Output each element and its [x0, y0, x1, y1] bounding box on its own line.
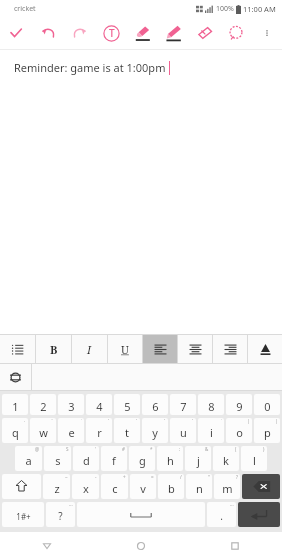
- staticText: .: [220, 509, 223, 523]
- button[interactable]: ˊ: [86, 418, 112, 443]
- button[interactable]: Recents: [188, 532, 282, 560]
- staticText: x: [83, 481, 89, 496]
- button[interactable]: (: [213, 446, 239, 471]
- button[interactable]: ': [73, 446, 99, 471]
- staticText: ': [95, 446, 97, 452]
- staticText: a: [25, 453, 32, 468]
- button[interactable]: ?: [214, 474, 240, 499]
- staticText: 4: [96, 399, 103, 414]
- staticText: k: [223, 453, 229, 468]
- staticText: t: [125, 425, 129, 440]
- button[interactable]: Lasso select: [220, 17, 251, 49]
- button[interactable]: |: [226, 418, 252, 443]
- button[interactable]: Bullet list: [0, 335, 35, 363]
- staticText: -: [95, 474, 97, 480]
- button[interactable]: *: [129, 446, 155, 471]
- button[interactable]: Align center: [178, 335, 212, 363]
- button[interactable]: =: [130, 474, 156, 499]
- staticText: 3: [68, 399, 75, 414]
- button[interactable]: ˙: [198, 418, 224, 443]
- staticText: ˊ: [164, 418, 166, 424]
- button[interactable]: Text color: [248, 335, 282, 363]
- button[interactable]: 1: [2, 394, 28, 415]
- button[interactable]: ~: [43, 474, 70, 499]
- button[interactable]: Sync: [0, 364, 31, 390]
- button[interactable]: ): [241, 446, 267, 471]
- button[interactable]: 7: [170, 394, 196, 415]
- button[interactable]: :: [157, 446, 183, 471]
- staticText: 5: [124, 399, 131, 414]
- staticText: ?: [236, 474, 238, 480]
- staticText: b: [168, 481, 175, 496]
- button[interactable]: 1#+: [2, 502, 44, 527]
- button[interactable]: 0: [254, 394, 280, 415]
- button[interactable]: Shift: [2, 474, 41, 499]
- button[interactable]: Eraser: [189, 17, 220, 49]
- button[interactable]: U: [108, 335, 142, 363]
- button[interactable]: Home: [94, 532, 188, 560]
- staticText: U: [121, 342, 129, 357]
- button[interactable]: #: [101, 446, 127, 471]
- staticText: w: [39, 425, 48, 440]
- button[interactable]: ···: [207, 502, 236, 527]
- button[interactable]: ˙: [58, 418, 84, 443]
- button[interactable]: Space: [77, 502, 205, 527]
- button[interactable]: Reminder: game is at 1:00pm: [0, 50, 282, 334]
- staticText: S: [66, 446, 69, 452]
- button[interactable]: B: [36, 335, 71, 363]
- staticText: (: [235, 446, 237, 452]
- button[interactable]: &: [185, 446, 211, 471]
- staticText: 8: [208, 399, 215, 414]
- button[interactable]: ···: [46, 502, 75, 527]
- button[interactable]: Text tool: [96, 17, 127, 49]
- button[interactable]: More options: [251, 17, 282, 49]
- button[interactable]: /: [158, 474, 184, 499]
- staticText: :: [179, 446, 181, 452]
- button[interactable]: Brush: [127, 17, 158, 49]
- button[interactable]: Backspace: [242, 474, 280, 499]
- button[interactable]: Align right: [213, 335, 247, 363]
- staticText: n: [196, 481, 203, 496]
- button[interactable]: ˋ: [114, 418, 140, 443]
- staticText: f: [112, 453, 116, 468]
- staticText: 9: [236, 399, 243, 414]
- button[interactable]: 9: [226, 394, 252, 415]
- staticText: ¨: [51, 418, 54, 424]
- button[interactable]: Enter: [238, 502, 280, 527]
- button[interactable]: ¨: [30, 418, 56, 443]
- staticText: q: [12, 425, 19, 440]
- button[interactable]: Pen: [158, 17, 189, 49]
- button[interactable]: 8: [198, 394, 224, 415]
- staticText: l: [253, 453, 256, 468]
- button[interactable]: 4: [86, 394, 112, 415]
- staticText: 1: [12, 399, 19, 414]
- button[interactable]: |: [254, 418, 280, 443]
- staticText: I: [87, 342, 92, 357]
- button[interactable]: I: [72, 335, 107, 363]
- button[interactable]: ·: [2, 418, 28, 443]
- staticText: #: [122, 446, 125, 452]
- staticText: p: [264, 425, 271, 440]
- button[interactable]: +: [101, 474, 128, 499]
- button[interactable]: Undo: [32, 17, 64, 49]
- button[interactable]: -: [72, 474, 99, 499]
- button[interactable]: S: [44, 446, 71, 471]
- button[interactable]: ": [186, 474, 212, 499]
- staticText: o: [236, 425, 243, 440]
- button[interactable]: ˋ: [170, 418, 196, 443]
- button[interactable]: Align left: [143, 335, 177, 363]
- staticText: ···: [230, 502, 234, 508]
- button[interactable]: 5: [114, 394, 140, 415]
- button[interactable]: 3: [58, 394, 84, 415]
- button[interactable]: ˊ: [142, 418, 168, 443]
- button[interactable]: Done: [0, 17, 32, 49]
- button[interactable]: Back: [0, 532, 94, 560]
- button[interactable]: 2: [30, 394, 56, 415]
- staticText: ): [263, 446, 265, 452]
- staticText: &: [205, 446, 209, 452]
- button[interactable]: 6: [142, 394, 168, 415]
- button[interactable]: Redo: [64, 17, 96, 49]
- staticText: +: [123, 474, 126, 480]
- button[interactable]: @: [15, 446, 42, 471]
